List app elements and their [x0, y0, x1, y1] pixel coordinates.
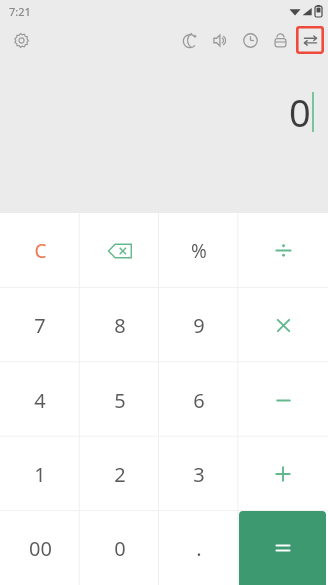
button[interactable]: C	[0, 213, 80, 288]
button[interactable]: Unit converter	[295, 25, 325, 55]
staticText: 0	[114, 535, 126, 562]
button[interactable]: 7	[0, 288, 80, 363]
staticText: 0	[289, 86, 311, 138]
button[interactable]: Divide	[238, 213, 328, 288]
button[interactable]: 1	[0, 437, 80, 511]
staticText: 9	[193, 312, 205, 339]
button[interactable]: 3	[159, 437, 238, 511]
button[interactable]: 00	[0, 511, 80, 585]
button[interactable]: 2	[80, 437, 159, 511]
staticText: 8	[114, 312, 126, 339]
button[interactable]: 9	[159, 288, 238, 363]
button[interactable]: Minus	[238, 363, 328, 437]
button[interactable]: .	[159, 511, 238, 585]
staticText: %	[191, 238, 207, 264]
button[interactable]: History	[235, 25, 265, 55]
staticText: 3	[193, 461, 205, 488]
staticText: 1	[34, 461, 46, 488]
button[interactable]: Night mode	[175, 25, 205, 55]
button[interactable]: Backspace	[80, 213, 159, 288]
staticText: 7	[34, 312, 46, 339]
button[interactable]: 0	[80, 511, 159, 585]
button[interactable]: Sound	[205, 25, 235, 55]
button[interactable]: 4	[0, 363, 80, 437]
staticText: 6	[193, 387, 205, 414]
button[interactable]: %	[159, 213, 238, 288]
staticText: 2	[114, 461, 126, 488]
staticText: 00	[29, 535, 52, 562]
button[interactable]: 6	[159, 363, 238, 437]
button[interactable]: Plus	[238, 437, 328, 511]
staticText: 7:21	[9, 4, 31, 19]
button[interactable]: 5	[80, 363, 159, 437]
button[interactable]: Multiply	[238, 288, 328, 363]
button[interactable]: 8	[80, 288, 159, 363]
staticText: 4	[34, 387, 46, 414]
button[interactable]: Equals	[239, 511, 326, 585]
button[interactable]: Settings	[8, 27, 34, 53]
button[interactable]: Lock	[265, 25, 295, 55]
staticText: .	[196, 535, 202, 562]
staticText: 5	[114, 387, 126, 414]
staticText: C	[34, 238, 47, 264]
